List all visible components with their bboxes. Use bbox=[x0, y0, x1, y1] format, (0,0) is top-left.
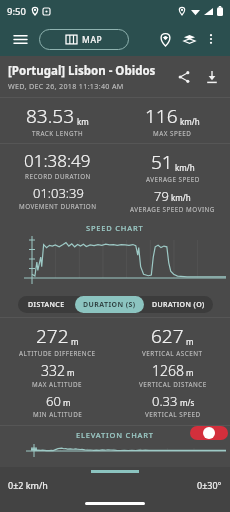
button[interactable]: My location bbox=[153, 27, 177, 51]
staticText: 332 bbox=[41, 361, 65, 380]
staticText: m bbox=[186, 336, 194, 347]
button[interactable]: Download bbox=[200, 65, 224, 89]
staticText: 79 bbox=[154, 187, 169, 205]
staticText: km/h bbox=[175, 162, 195, 173]
staticText: MAP bbox=[82, 34, 103, 46]
staticText: TRACK LENGTH bbox=[32, 129, 84, 138]
staticText: km bbox=[77, 116, 89, 127]
staticText: WED, DEC 26, 2018 11:13:40 AM bbox=[8, 81, 124, 91]
staticText: 0.33 bbox=[152, 392, 178, 410]
staticText: AVERAGE SPEED MOVING bbox=[130, 205, 215, 214]
button[interactable]: MAP bbox=[39, 29, 129, 50]
staticText: 9:50 bbox=[7, 5, 26, 18]
staticText: 01:03:39 bbox=[33, 184, 84, 202]
staticText: MIN ALTITUDE bbox=[33, 410, 83, 419]
button[interactable]: DISTANCE bbox=[18, 296, 75, 313]
staticText: RECORD DURATION bbox=[25, 172, 91, 181]
staticText: DISTANCE bbox=[28, 300, 65, 310]
button[interactable]: Record bbox=[190, 426, 228, 440]
staticText: MAX SPEED bbox=[153, 129, 192, 138]
staticText: VERTICAL SPEED bbox=[145, 410, 201, 419]
staticText: ELEVATION CHART bbox=[76, 430, 154, 440]
button[interactable]: Layers bbox=[177, 27, 201, 51]
staticText: km/h bbox=[180, 116, 200, 127]
staticText: m bbox=[186, 367, 194, 378]
staticText: 272 bbox=[36, 323, 69, 349]
staticText: DURATION (S) bbox=[83, 300, 136, 310]
staticText: 01:38:49 bbox=[24, 149, 91, 172]
staticText: 0±2 km/h bbox=[8, 479, 48, 491]
staticText: SPEED CHART bbox=[86, 223, 144, 233]
staticText: 116 bbox=[145, 103, 178, 129]
button[interactable]: Share bbox=[172, 65, 196, 89]
staticText: VERTICAL ASCENT bbox=[142, 349, 203, 358]
staticText: m bbox=[63, 397, 71, 408]
staticText: AVERAGE SPEED bbox=[146, 175, 200, 184]
staticText: 51 bbox=[151, 149, 173, 175]
button[interactable]: More options bbox=[201, 29, 221, 49]
staticText: km/h bbox=[171, 192, 191, 203]
staticText: m bbox=[67, 367, 75, 378]
staticText: MOVEMENT DURATION bbox=[19, 202, 97, 211]
staticText: 0±30° bbox=[197, 479, 222, 491]
staticText: 627 bbox=[151, 323, 184, 349]
staticText: 83.53 bbox=[26, 103, 75, 129]
staticText: m/s bbox=[180, 397, 195, 408]
staticText: [Portugal] Lisbon - Obidos bbox=[8, 63, 156, 79]
staticText: 60 bbox=[46, 392, 61, 410]
staticText: MAX ALTITUDE bbox=[32, 380, 83, 389]
button[interactable]: Menu bbox=[9, 28, 31, 50]
staticText: VERTICAL DISTANCE bbox=[139, 380, 207, 389]
staticText: DURATION (O) bbox=[152, 300, 205, 310]
staticText: m bbox=[71, 336, 79, 347]
staticText: 1268 bbox=[152, 361, 184, 380]
staticText: ALTITUDE DIFFERENCE bbox=[19, 349, 96, 358]
button[interactable]: DURATION (O) bbox=[144, 296, 213, 313]
button[interactable]: DURATION (S) bbox=[75, 296, 144, 313]
